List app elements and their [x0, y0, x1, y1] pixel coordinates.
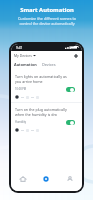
button[interactable]: Toggle — [66, 120, 75, 125]
button[interactable]: Turn lights on automatically as you arri… — [11, 70, 82, 102]
staticText: 9:41 — [16, 46, 23, 50]
staticText: 10:00 PM — [15, 87, 27, 91]
staticText: Devices — [42, 62, 56, 67]
button[interactable]: My Devices — [14, 53, 36, 58]
staticText: Turn on the plug automatically when the … — [15, 107, 67, 117]
button[interactable]: Automation — [14, 62, 37, 67]
button[interactable]: Home — [11, 172, 34, 185]
staticText: Smart Automation — [20, 6, 74, 14]
staticText: Humidity — [15, 120, 27, 124]
button[interactable]: Profile — [58, 172, 82, 185]
staticText: My Devices — [14, 53, 32, 58]
button[interactable]: Add — [72, 52, 79, 59]
button[interactable]: Turn on the plug automatically when the … — [11, 103, 82, 135]
button[interactable]: Devices — [42, 62, 56, 67]
staticText: Automation — [14, 62, 37, 67]
staticText: Turn lights on automatically as you arri… — [15, 74, 67, 84]
staticText: Customize the different scenes to contro… — [18, 16, 76, 26]
button[interactable]: Toggle — [66, 87, 75, 92]
button[interactable]: Automation — [34, 172, 58, 185]
